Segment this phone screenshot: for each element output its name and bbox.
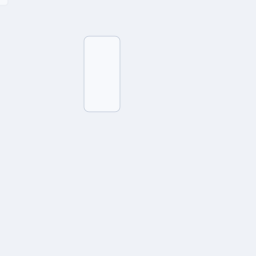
button[interactable]: Previous tile <box>0 0 8 5</box>
button[interactable]: Tile <box>84 36 120 112</box>
